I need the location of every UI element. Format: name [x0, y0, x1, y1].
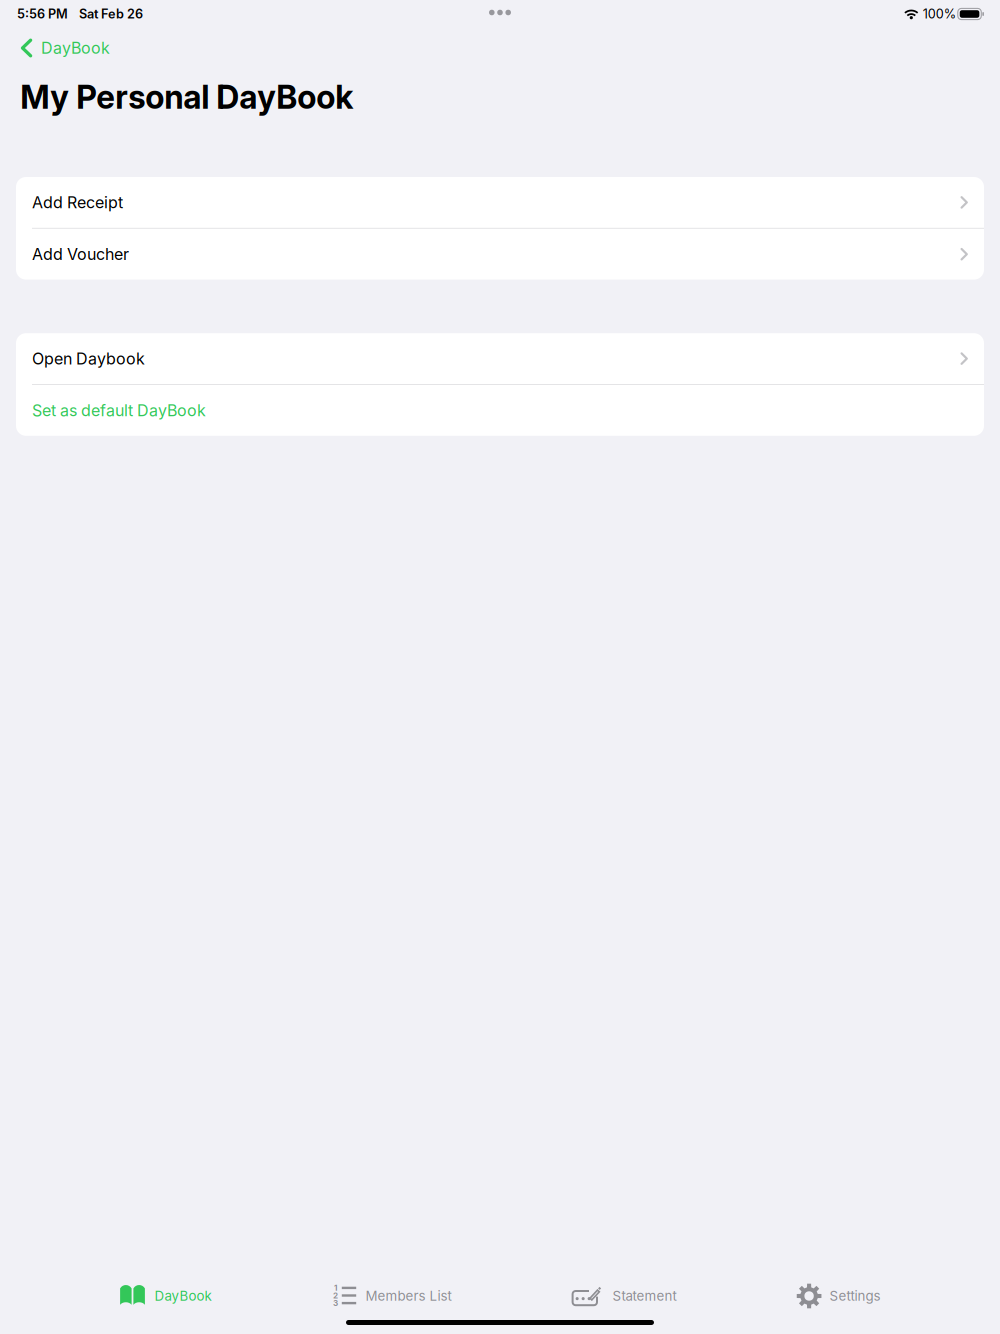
staticText: 2	[333, 1291, 338, 1300]
button[interactable]: Add Voucher	[16, 229, 984, 280]
staticText: 3	[333, 1298, 338, 1308]
staticText: My Personal DayBook	[20, 77, 353, 116]
button[interactable]: DayBook	[0, 33, 1000, 63]
button[interactable]: Add Receipt	[16, 177, 984, 228]
staticText: 1	[334, 1283, 337, 1293]
staticText: Statement	[613, 1288, 677, 1304]
button[interactable]: Statement	[572, 1272, 677, 1320]
button[interactable]: Settings	[797, 1270, 881, 1321]
staticText: DayBook	[41, 38, 110, 58]
staticText: Add Voucher	[32, 244, 129, 264]
staticText: DayBook	[155, 1288, 212, 1304]
staticText: 100%	[923, 6, 956, 22]
staticText: Settings	[830, 1288, 881, 1304]
staticText: Set as default DayBook	[32, 401, 206, 420]
button[interactable]: DayBook	[119, 1272, 212, 1320]
staticText: Members List	[366, 1288, 452, 1304]
button[interactable]: Set as default DayBook	[16, 385, 984, 436]
button[interactable]: 1	[332, 1272, 452, 1320]
staticText: 5:56 PM	[17, 6, 68, 22]
staticText: Sat Feb 26	[79, 6, 143, 22]
button[interactable]: Open Daybook	[16, 333, 984, 384]
staticText: Add Receipt	[32, 193, 123, 212]
staticText: Open Daybook	[32, 349, 145, 368]
